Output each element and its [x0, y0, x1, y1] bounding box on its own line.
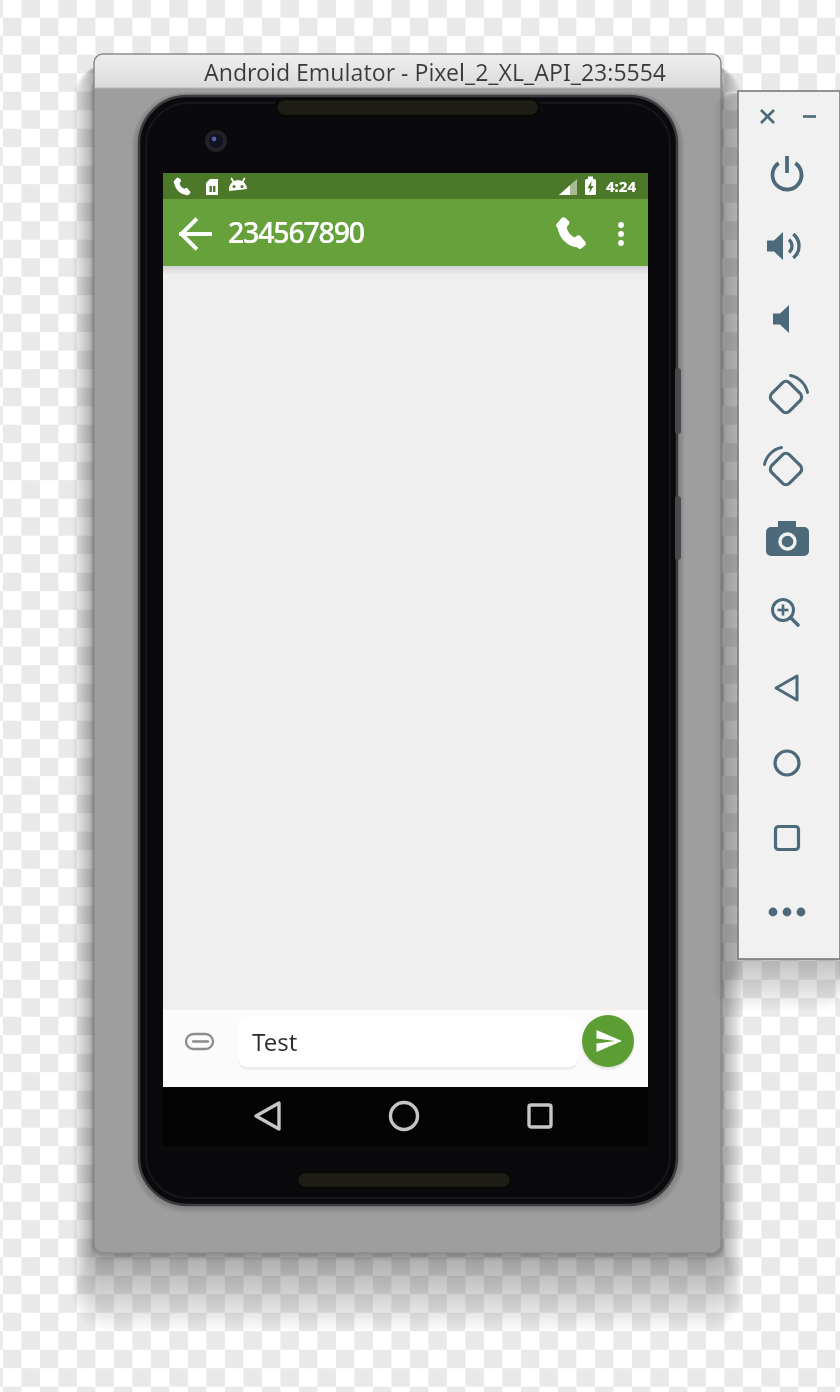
button[interactable] — [763, 295, 811, 343]
button[interactable] — [763, 516, 811, 564]
button[interactable] — [177, 213, 219, 255]
button[interactable] — [240, 1091, 296, 1141]
button[interactable] — [763, 814, 811, 862]
button[interactable] — [763, 590, 811, 638]
button[interactable] — [763, 739, 811, 787]
button[interactable] — [763, 664, 811, 712]
button[interactable] — [763, 151, 811, 199]
button[interactable] — [600, 213, 642, 255]
button[interactable] — [791, 99, 828, 135]
button[interactable] — [581, 1014, 635, 1068]
button[interactable] — [763, 442, 811, 490]
button[interactable] — [512, 1091, 568, 1141]
button[interactable] — [376, 1091, 432, 1141]
button[interactable] — [763, 888, 811, 936]
staticText: 4:24 — [606, 176, 636, 196]
staticText: Android Emulator - Pixel_2_XL_API_23:555… — [204, 56, 667, 87]
button[interactable] — [238, 1016, 578, 1067]
button[interactable] — [749, 99, 786, 135]
staticText: 234567890 — [228, 213, 364, 252]
button[interactable] — [179, 1022, 219, 1062]
button[interactable] — [550, 213, 592, 255]
button[interactable] — [763, 222, 811, 270]
staticText: Test — [252, 1025, 298, 1058]
button[interactable] — [763, 369, 811, 417]
